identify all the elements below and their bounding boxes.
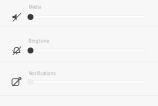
staticText: Ringtone: [28, 38, 48, 44]
button[interactable]: Ringtone: [0, 26, 158, 61]
staticText: Notifications: [28, 70, 55, 76]
button[interactable]: Notifications: [0, 61, 158, 95]
button[interactable]: Media: [0, 0, 158, 26]
staticText: Media: [28, 4, 40, 10]
